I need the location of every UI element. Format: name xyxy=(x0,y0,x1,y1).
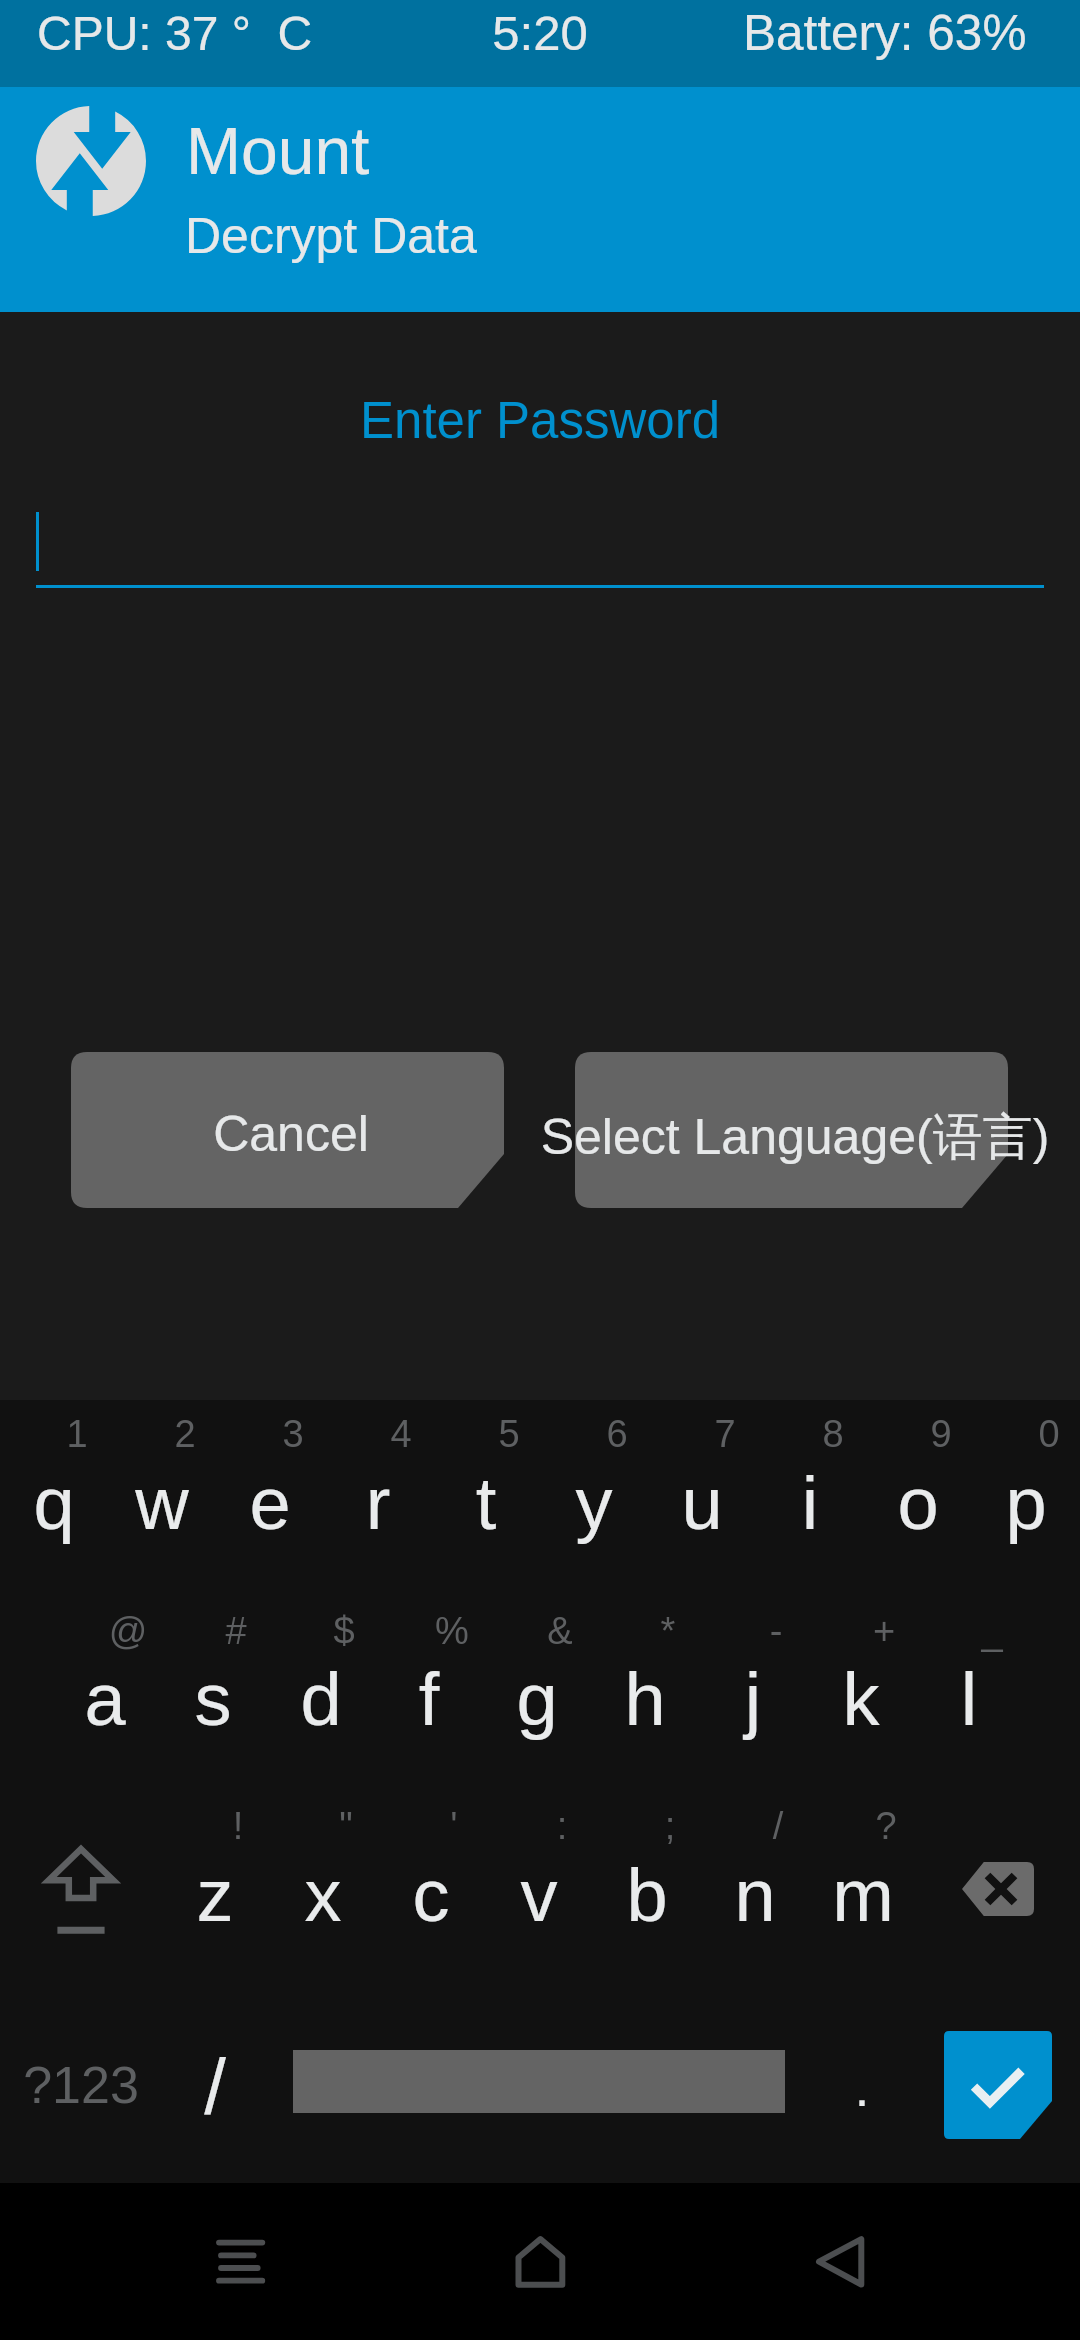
button[interactable]: Back xyxy=(780,2190,900,2340)
button[interactable]: i 8 xyxy=(756,1389,864,1579)
staticText: / xyxy=(0,2043,615,2130)
staticText: # xyxy=(0,1610,636,1652)
button[interactable]: Cancel xyxy=(71,1052,504,1208)
staticText: ? xyxy=(486,1805,1080,1847)
staticText: " xyxy=(0,1805,746,1847)
staticText: $ xyxy=(0,1610,744,1652)
staticText: ! xyxy=(0,1805,638,1847)
staticText: 4 xyxy=(1,1413,801,1455)
staticText: Enter Password xyxy=(140,392,940,449)
button[interactable]: z ! xyxy=(161,1781,269,1971)
staticText: ?123 xyxy=(0,2056,481,2114)
staticText: f xyxy=(29,1658,829,1741)
staticText: d xyxy=(0,1658,721,1741)
button[interactable]: h * xyxy=(591,1585,699,1775)
staticText: y xyxy=(194,1462,994,1545)
staticText: 5 xyxy=(109,1413,909,1455)
staticText: w xyxy=(0,1462,562,1545)
button[interactable]: Backspace xyxy=(918,1790,1080,1980)
staticText: l xyxy=(569,1658,1080,1741)
staticText: 0 xyxy=(649,1413,1080,1455)
staticText: s xyxy=(0,1658,613,1741)
button[interactable]: v : xyxy=(485,1781,593,1971)
button[interactable]: e 3 xyxy=(216,1389,324,1579)
button[interactable]: o 9 xyxy=(864,1389,972,1579)
button[interactable]: l _ xyxy=(915,1585,1023,1775)
button[interactable]: d $ xyxy=(267,1585,375,1775)
button[interactable]: Home xyxy=(480,2190,600,2340)
staticText: t xyxy=(86,1462,886,1545)
staticText: ' xyxy=(54,1805,854,1847)
staticText: k xyxy=(461,1658,1080,1741)
staticText: 7 xyxy=(325,1413,1080,1455)
staticText: c xyxy=(31,1854,831,1937)
staticText: 3 xyxy=(0,1413,693,1455)
staticText: j xyxy=(353,1658,1080,1741)
staticText: n xyxy=(355,1854,1080,1937)
button[interactable]: y 6 xyxy=(540,1389,648,1579)
staticText: q xyxy=(0,1462,454,1545)
button[interactable]: Shift xyxy=(0,1790,162,1980)
staticText: CPU: 37 ° C xyxy=(37,7,313,61)
button[interactable]: x " xyxy=(269,1781,377,1971)
staticText: . xyxy=(462,2059,1080,2117)
button[interactable]: q 1 xyxy=(0,1389,108,1579)
button[interactable]: k + xyxy=(807,1585,915,1775)
button[interactable]: a @ xyxy=(51,1585,159,1775)
button[interactable]: f % xyxy=(375,1585,483,1775)
staticText: e xyxy=(0,1462,670,1545)
staticText: % xyxy=(52,1610,852,1652)
button[interactable]: u 7 xyxy=(648,1389,756,1579)
staticText: Battery: 63% xyxy=(743,5,1027,60)
button[interactable]: Recent apps xyxy=(180,2190,300,2340)
staticText: / xyxy=(378,1805,1080,1847)
button[interactable]: m ? xyxy=(809,1781,917,1971)
staticText: r xyxy=(0,1462,778,1545)
staticText: 9 xyxy=(541,1413,1080,1455)
staticText: i xyxy=(410,1462,1080,1545)
staticText: + xyxy=(484,1610,1080,1652)
staticText: m xyxy=(463,1854,1080,1937)
staticText: 1 xyxy=(0,1413,477,1455)
button[interactable]: Symbols ?123 xyxy=(0,2020,170,2170)
staticText: & xyxy=(160,1610,960,1652)
button[interactable]: p 0 xyxy=(972,1389,1080,1579)
staticText: * xyxy=(268,1610,1068,1652)
staticText: h xyxy=(245,1658,1045,1741)
staticText: @ xyxy=(0,1610,528,1652)
staticText: 8 xyxy=(433,1413,1080,1455)
button[interactable]: g & xyxy=(483,1585,591,1775)
staticText: Select Language(语言) xyxy=(395,1106,1080,1169)
button[interactable]: r 4 xyxy=(324,1389,432,1579)
staticText: v xyxy=(139,1854,939,1937)
staticText: Decrypt Data xyxy=(185,208,477,264)
staticText: b xyxy=(247,1854,1047,1937)
staticText: 5:20 xyxy=(140,6,940,61)
button[interactable]: Select Language(语言) xyxy=(575,1052,1008,1208)
staticText: p xyxy=(626,1462,1080,1545)
staticText: a xyxy=(0,1658,505,1741)
button[interactable]: b ; xyxy=(593,1781,701,1971)
button[interactable]: Space xyxy=(275,2020,805,2170)
staticText: : xyxy=(162,1805,962,1847)
staticText: _ xyxy=(592,1610,1080,1652)
button[interactable]: w 2 xyxy=(108,1389,216,1579)
button[interactable]: j - xyxy=(699,1585,807,1775)
button[interactable]: Slash xyxy=(170,2020,270,2170)
button[interactable]: Period xyxy=(820,2020,910,2170)
staticText: x xyxy=(0,1854,723,1937)
staticText: u xyxy=(302,1462,1080,1545)
button[interactable]: c ' xyxy=(377,1781,485,1971)
button[interactable]: t 5 xyxy=(432,1389,540,1579)
staticText: g xyxy=(137,1658,937,1741)
staticText: ; xyxy=(270,1805,1070,1847)
button[interactable]: s # xyxy=(159,1585,267,1775)
staticText: o xyxy=(518,1462,1080,1545)
staticText: 6 xyxy=(217,1413,1017,1455)
staticText: 2 xyxy=(0,1413,585,1455)
button[interactable]: Enter xyxy=(944,2031,1052,2139)
staticText: - xyxy=(376,1610,1080,1652)
staticText: z xyxy=(0,1854,615,1937)
staticText: Mount xyxy=(186,114,370,188)
button[interactable]: n / xyxy=(701,1781,809,1971)
